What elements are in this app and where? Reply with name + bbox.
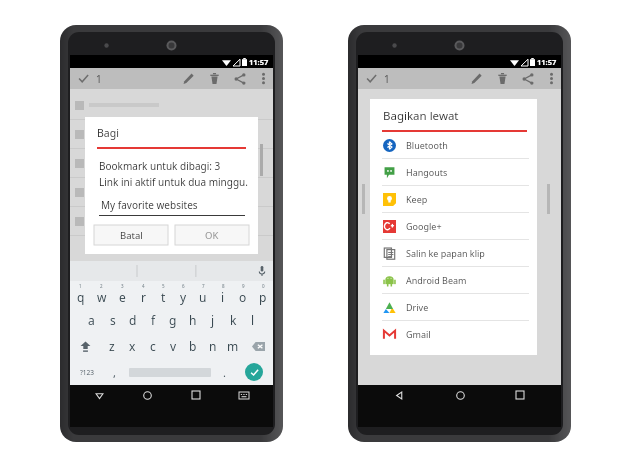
button[interactable]: 6 (173, 281, 193, 307)
button[interactable]: Home (136, 385, 158, 405)
button[interactable]: Share (515, 68, 541, 89)
button[interactable]: s (102, 307, 123, 333)
staticText: Bookmark untuk dibagi: 3 (99, 159, 221, 173)
button[interactable]: 1 (70, 281, 91, 307)
staticText: b (189, 338, 197, 354)
button[interactable]: Space (125, 359, 214, 385)
staticText: e (119, 289, 126, 305)
button[interactable]: Google+ (370, 213, 537, 239)
button[interactable]: More options (253, 68, 273, 89)
button[interactable]: 3 (112, 281, 133, 307)
button[interactable]: g (163, 307, 183, 333)
button[interactable]: Gmail (370, 321, 537, 347)
staticText: 7 (202, 283, 205, 289)
staticText: 8 (222, 283, 225, 289)
button[interactable]: Bluetooth (370, 132, 537, 158)
button[interactable]: Keyboard (233, 385, 255, 405)
button[interactable]: Edit (175, 68, 201, 89)
staticText: y (180, 289, 187, 305)
button[interactable]: a (81, 307, 102, 333)
button[interactable]: Done (70, 68, 96, 89)
staticText: 5 (162, 283, 165, 289)
staticText: ?123 (80, 368, 94, 377)
button[interactable]: b (183, 333, 203, 359)
staticText: 0 (262, 283, 265, 289)
button[interactable]: n (203, 333, 223, 359)
staticText: 9 (242, 283, 245, 289)
button[interactable]: Hangouts (370, 159, 537, 185)
button[interactable]: v (163, 333, 183, 359)
button[interactable]: l (243, 307, 263, 333)
staticText: l (251, 312, 255, 328)
staticText: 11:57 (537, 57, 557, 67)
button[interactable]: f (143, 307, 163, 333)
button[interactable]: . (214, 359, 235, 385)
button[interactable]: Enter (235, 359, 273, 385)
staticText: o (239, 289, 247, 305)
button[interactable]: 7 (193, 281, 213, 307)
staticText: p (259, 289, 267, 305)
staticText: , (113, 365, 116, 380)
staticText: Gmail (406, 328, 431, 340)
button[interactable]: 4 (133, 281, 153, 307)
staticText: k (230, 312, 237, 328)
staticText: 11:57 (249, 57, 269, 67)
button[interactable]: h (183, 307, 203, 333)
button[interactable]: k (223, 307, 243, 333)
button[interactable]: Back (88, 385, 110, 405)
button[interactable]: Home (449, 385, 471, 405)
button[interactable]: 9 (233, 281, 253, 307)
staticText: Keep (406, 193, 428, 205)
button[interactable]: c (143, 333, 163, 359)
staticText: c (150, 338, 156, 354)
staticText: 1 (96, 72, 102, 86)
button[interactable]: Keep (370, 186, 537, 212)
button[interactable]: 0 (253, 281, 273, 307)
staticText: r (141, 289, 146, 305)
staticText: v (170, 338, 177, 354)
staticText: Salin ke papan klip (406, 247, 485, 259)
button[interactable]: z (101, 333, 122, 359)
staticText: a (88, 312, 95, 328)
button[interactable]: 2 (91, 281, 112, 307)
button[interactable]: Done (358, 68, 384, 89)
button[interactable]: Recents (185, 385, 207, 405)
staticText: 3 (121, 283, 124, 289)
button[interactable]: Backspace (243, 333, 273, 359)
staticText: z (109, 338, 115, 354)
staticText: g (169, 312, 177, 328)
staticText: My favorite websites (101, 198, 198, 212)
button[interactable]: 5 (153, 281, 173, 307)
button[interactable]: Back (388, 385, 410, 405)
staticText: m (227, 338, 239, 354)
button[interactable]: Batal (94, 225, 168, 245)
staticText: Drive (406, 301, 429, 313)
staticText: n (209, 338, 217, 354)
staticText: Bagi (97, 126, 119, 140)
button[interactable]: Android Beam (370, 267, 537, 293)
staticText: s (110, 312, 116, 328)
staticText: Batal (120, 229, 143, 242)
staticText: 6 (182, 283, 185, 289)
staticText: t (161, 289, 166, 305)
staticText: w (97, 289, 107, 305)
button[interactable]: 8 (213, 281, 233, 307)
button[interactable]: , (104, 359, 125, 385)
button[interactable]: j (203, 307, 223, 333)
button[interactable]: Drive (370, 294, 537, 320)
button[interactable]: x (122, 333, 143, 359)
button[interactable]: ?123 (70, 359, 104, 385)
button[interactable]: Recents (509, 385, 531, 405)
button[interactable]: Salin ke papan klip (370, 240, 537, 266)
button[interactable]: m (223, 333, 243, 359)
button[interactable]: Shift (70, 333, 101, 359)
button[interactable]: More options (541, 68, 561, 89)
staticText: 2 (100, 283, 103, 289)
button[interactable]: Delete (201, 68, 227, 89)
button[interactable]: Edit (463, 68, 489, 89)
staticText: q (77, 289, 85, 305)
button[interactable]: d (123, 307, 143, 333)
button[interactable]: OK (175, 225, 249, 245)
button[interactable]: Delete (489, 68, 515, 89)
button[interactable]: Share (227, 68, 253, 89)
